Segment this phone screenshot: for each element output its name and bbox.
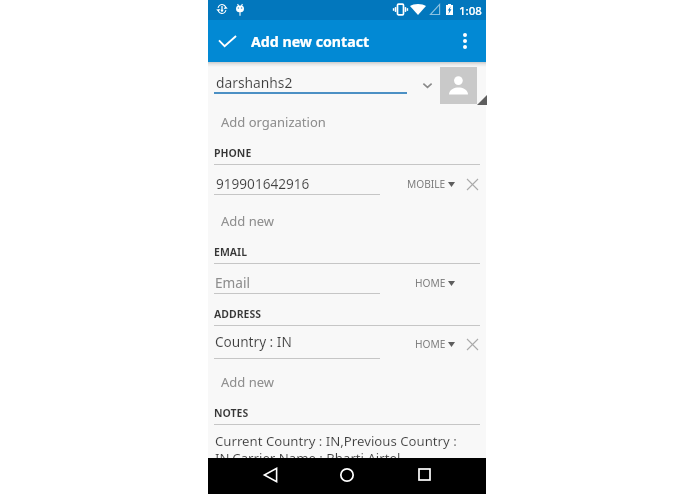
button[interactable]: Expand name details [414,72,440,98]
staticText: Add new [221,373,275,391]
button[interactable]: Change label [404,333,455,355]
button[interactable]: Add new [208,206,486,230]
staticText: HOME [415,276,446,290]
button[interactable]: Save contact [209,20,245,62]
staticText: darshanhs2 [216,73,293,92]
staticText: Current Country : IN,Previous Country : … [215,432,457,467]
button[interactable]: Add contact photo [440,67,477,104]
staticText: Add new contact [251,32,370,51]
button[interactable]: Remove field [463,173,481,195]
staticText: Add new [221,212,275,230]
staticText: PHONE [214,146,252,160]
staticText: Country : IN [215,332,292,351]
staticText: HOME [415,337,446,351]
staticText: Add organization [221,113,326,131]
button[interactable]: Change label [404,173,455,195]
staticText: 1:08 [459,3,482,19]
button[interactable]: More options [448,20,482,62]
button[interactable]: Remove field [463,333,481,355]
button[interactable]: Add new [208,367,486,391]
staticText: MOBILE [407,177,446,191]
staticText: NOTES [214,406,249,420]
button[interactable]: Home [327,456,367,493]
staticText: ADDRESS [214,307,261,321]
staticText: EMAIL [214,245,248,259]
button[interactable]: Recent apps [404,456,444,493]
button[interactable]: Change label [404,272,455,294]
staticText: 919901642916 [216,174,310,193]
button[interactable]: Add organization [208,107,486,131]
button[interactable]: Back [250,456,290,493]
staticText: Email [215,273,250,292]
